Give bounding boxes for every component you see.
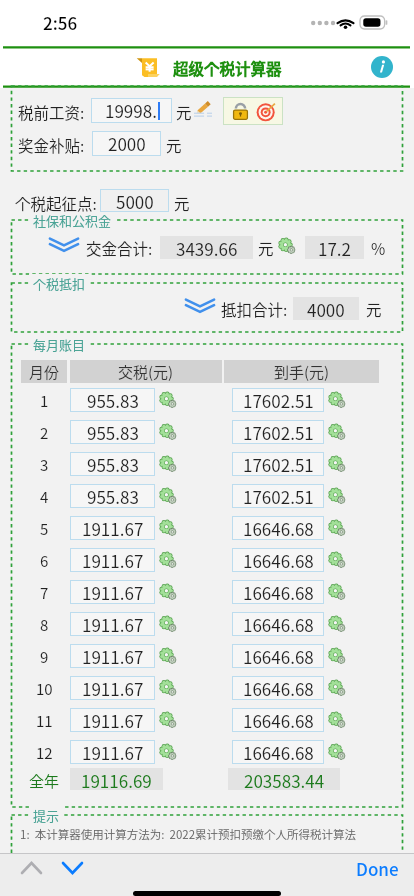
button[interactable]: Expand deductions — [184, 298, 216, 314]
button[interactable]: 16646.68 — [232, 516, 324, 540]
button[interactable]: 955.83 — [70, 484, 155, 508]
staticText: 19998. — [105, 98, 157, 123]
button[interactable]: Lock and target — [223, 97, 283, 125]
button[interactable]: Settings — [279, 238, 295, 254]
button[interactable]: 1911.67 — [70, 644, 155, 668]
button[interactable]: Net settings — [329, 744, 345, 760]
button[interactable]: 1911.67 — [70, 548, 155, 572]
button[interactable]: Tax settings — [160, 456, 176, 472]
button[interactable]: Net settings — [329, 552, 345, 568]
button[interactable]: 16646.68 — [232, 740, 324, 764]
staticText: 元 — [176, 101, 192, 123]
staticText: 17602.51 — [243, 388, 314, 412]
button[interactable]: Tax settings — [160, 520, 176, 536]
button[interactable]: Expand social insurance — [48, 237, 80, 253]
staticText: 12 — [36, 742, 53, 762]
staticText: 元 — [258, 237, 274, 259]
button[interactable]: 19998. — [91, 98, 172, 123]
button[interactable]: 17602.51 — [232, 388, 324, 412]
button[interactable]: 955.83 — [70, 388, 155, 412]
button[interactable]: Tax settings — [160, 616, 176, 632]
staticText: 16646.68 — [243, 644, 314, 668]
button[interactable]: Net settings — [329, 584, 345, 600]
button[interactable]: 16646.68 — [232, 580, 324, 604]
button[interactable]: 2000 — [92, 131, 161, 156]
staticText: 7 — [40, 582, 49, 602]
staticText: 全年 — [29, 770, 60, 790]
staticText: 955.83 — [87, 388, 139, 412]
staticText: 955.83 — [87, 484, 139, 508]
button[interactable]: Tax settings — [160, 680, 176, 696]
staticText: 3 — [40, 454, 49, 474]
button[interactable]: 到手(元) — [224, 360, 379, 383]
button[interactable]: 1911.67 — [70, 708, 155, 732]
button[interactable]: 17602.51 — [232, 420, 324, 444]
button[interactable]: Net settings — [329, 648, 345, 664]
button[interactable]: Previous field — [11, 854, 52, 881]
button[interactable]: 16646.68 — [232, 708, 324, 732]
button[interactable]: Net settings — [329, 392, 345, 408]
staticText: 17602.51 — [243, 452, 314, 476]
button[interactable]: 17602.51 — [232, 484, 324, 508]
staticText: 社保和公积金 — [33, 211, 112, 229]
button[interactable]: Net settings — [329, 520, 345, 536]
button[interactable]: 1911.67 — [70, 612, 155, 636]
button[interactable]: Net settings — [329, 616, 345, 632]
staticText: 元 — [166, 134, 182, 156]
staticText: 17.2 — [318, 236, 352, 259]
button[interactable]: Tax settings — [160, 424, 176, 440]
button[interactable]: Net settings — [329, 712, 345, 728]
button[interactable]: 3439.66 — [160, 236, 253, 259]
staticText: 16646.68 — [243, 708, 314, 732]
button[interactable]: 16646.68 — [232, 644, 324, 668]
button[interactable]: Net settings — [329, 488, 345, 504]
button[interactable]: 955.83 — [70, 452, 155, 476]
button[interactable]: 1911.67 — [70, 740, 155, 764]
staticText: 16646.68 — [243, 740, 314, 764]
button[interactable]: 1911.67 — [70, 676, 155, 700]
button[interactable]: 1911.67 — [70, 580, 155, 604]
button[interactable]: Tax settings — [160, 744, 176, 760]
button[interactable]: 17602.51 — [232, 452, 324, 476]
button[interactable]: Tax settings — [160, 648, 176, 664]
button[interactable]: 16646.68 — [232, 548, 324, 572]
button[interactable]: 交税(元) — [70, 360, 222, 383]
button[interactable]: Tax settings — [160, 584, 176, 600]
staticText: 1911.67 — [82, 708, 144, 732]
staticText: Done — [356, 856, 399, 879]
staticText: % — [371, 237, 386, 259]
button[interactable]: 5000 — [100, 189, 169, 212]
button[interactable]: 月份 — [21, 360, 67, 383]
staticText: 955.83 — [87, 420, 139, 444]
button[interactable]: 203583.44 — [228, 768, 340, 790]
button[interactable]: Net settings — [329, 424, 345, 440]
button[interactable]: 955.83 — [70, 420, 155, 444]
button[interactable]: Tax settings — [160, 488, 176, 504]
button[interactable]: Tax settings — [160, 712, 176, 728]
staticText: 每月账目 — [33, 335, 86, 353]
button[interactable]: Info — [371, 56, 393, 78]
button[interactable]: Next field — [52, 854, 93, 881]
button[interactable]: 19116.69 — [70, 768, 163, 790]
button[interactable]: Net settings — [329, 456, 345, 472]
staticText: 1911.67 — [82, 676, 144, 700]
button[interactable]: 16646.68 — [232, 612, 324, 636]
staticText: 6 — [40, 550, 49, 570]
button[interactable]: 17.2 — [305, 236, 364, 259]
button[interactable]: Net settings — [329, 680, 345, 696]
button[interactable]: 1911.67 — [70, 516, 155, 540]
staticText: 1911.67 — [82, 516, 144, 540]
button[interactable]: 16646.68 — [232, 676, 324, 700]
staticText: 11 — [36, 710, 53, 730]
button[interactable]: Done — [352, 854, 403, 881]
button[interactable]: Tax settings — [160, 552, 176, 568]
staticText: 8 — [40, 614, 49, 634]
staticText: 交税(元) — [118, 361, 174, 383]
staticText: 到手(元) — [274, 361, 330, 383]
staticText: 16646.68 — [243, 548, 314, 572]
staticText: 提示 — [33, 806, 60, 824]
button[interactable]: 4000 — [293, 297, 359, 320]
button[interactable]: Tax settings — [160, 392, 176, 408]
button[interactable]: Edit — [194, 100, 212, 118]
staticText: 3439.66 — [176, 236, 238, 259]
